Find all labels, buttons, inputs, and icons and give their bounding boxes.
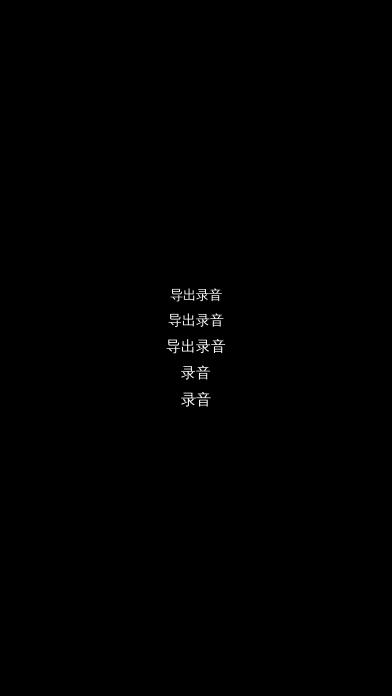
staticText: 导出录音 [166,337,226,356]
staticText: 录音 [181,364,211,382]
staticText: 录音 [181,390,211,409]
staticText: 导出录音 [170,287,222,303]
staticText: 导出录音 [168,311,224,329]
